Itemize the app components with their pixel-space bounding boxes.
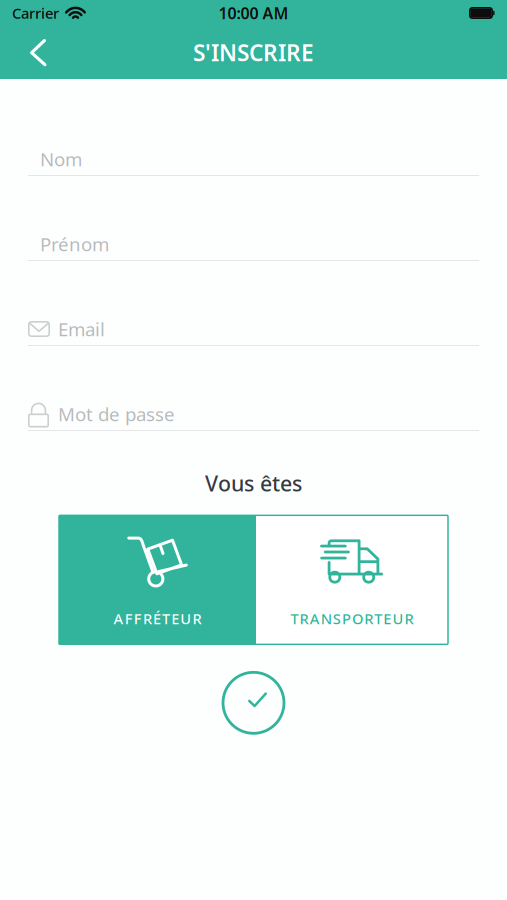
staticText: Nom: [40, 147, 82, 171]
staticText: Vous êtes: [205, 469, 302, 497]
button[interactable]: Back: [0, 26, 62, 79]
staticText: AFFRÉTEUR: [114, 609, 201, 628]
button[interactable]: Confirm: [223, 672, 284, 733]
staticText: Prénom: [40, 232, 109, 256]
staticText: 10:00 AM: [218, 2, 288, 24]
staticText: TRANSPORTEUR: [290, 609, 414, 628]
button[interactable]: AFFRÉTEUR: [59, 515, 256, 644]
staticText: Carrier: [12, 3, 59, 23]
button[interactable]: TRANSPORTEUR: [256, 515, 448, 644]
staticText: Mot de passe: [58, 402, 175, 426]
staticText: Email: [58, 317, 105, 341]
staticText: S'INSCRIRE: [193, 37, 314, 67]
